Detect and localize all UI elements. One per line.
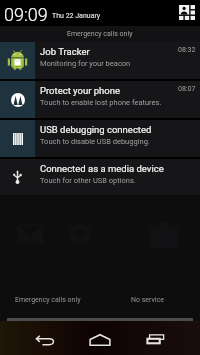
staticText: 08:32 [178, 46, 196, 54]
staticText: Connected as a media device [40, 163, 164, 174]
staticText: 08:07 [178, 85, 196, 93]
button[interactable]: Home [83, 324, 117, 355]
staticText: Monitoring for your beacon [40, 59, 131, 68]
button[interactable]: Job Tracker [0, 42, 200, 79]
staticText: Touch to enable lost phone features. [40, 98, 162, 107]
staticText: 09:09 [4, 4, 48, 25]
staticText: Emergency calls only [67, 30, 133, 38]
button[interactable]: USB debugging connected [0, 120, 200, 157]
staticText: USB debugging connected [40, 124, 152, 135]
button[interactable]: Recent apps [138, 324, 172, 355]
button[interactable]: Protect your phone [0, 81, 200, 118]
button[interactable]: Connected as a media device [0, 159, 200, 195]
staticText: Thu 22 January [52, 12, 101, 20]
staticText: Protect your phone [40, 85, 121, 96]
staticText: No service [131, 296, 164, 304]
staticText: Emergency calls only [15, 296, 81, 304]
button[interactable]: Back [28, 324, 62, 355]
staticText: Job Tracker [40, 46, 90, 57]
button[interactable]: Quick settings [176, 2, 198, 23]
staticText: Touch for other USB options. [40, 176, 136, 185]
staticText: Touch to disable USB debugging. [40, 137, 150, 146]
